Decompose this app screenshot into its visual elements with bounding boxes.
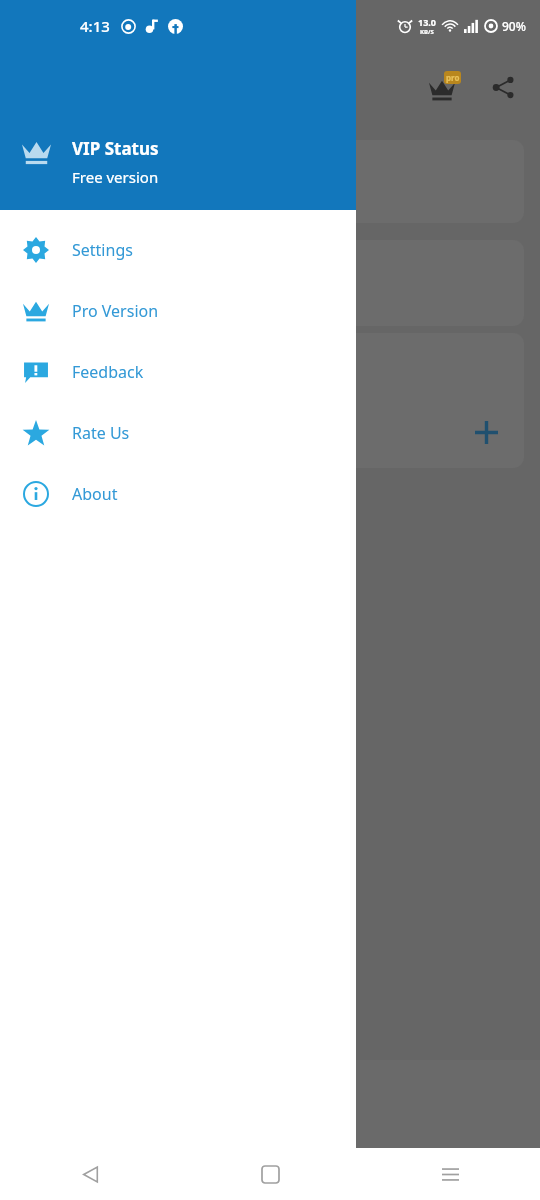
button[interactable]: Feedback: [0, 341, 356, 402]
button[interactable]: Share: [480, 64, 526, 110]
button[interactable]: Pro Version: [0, 280, 356, 341]
staticText: Feedback: [72, 361, 144, 383]
button[interactable]: Add connection: [468, 414, 504, 450]
staticText: 90%: [502, 18, 526, 34]
button[interactable]: Home: [180, 1148, 360, 1200]
button[interactable]: Settings: [0, 219, 356, 280]
staticText: 4:13: [80, 16, 110, 36]
button[interactable]: About: [0, 463, 356, 524]
staticText: Pro Version: [72, 300, 159, 322]
button[interactable]: Rate Us: [0, 402, 356, 463]
button[interactable]: Provider: [16, 140, 524, 223]
staticText: Free version: [72, 167, 159, 187]
staticText: Provider: [36, 160, 92, 179]
staticText: VIP Status: [72, 137, 159, 160]
button[interactable]: Connection Name: [16, 240, 524, 326]
staticText: Tap to give permission: [36, 286, 206, 308]
button[interactable]: VIP Status: [0, 128, 356, 210]
button[interactable]: Recent apps: [360, 1148, 540, 1200]
button[interactable]: Go Pro: [422, 64, 468, 110]
staticText: Rate Us: [72, 422, 130, 444]
staticText: 13.0: [418, 16, 436, 28]
button[interactable]: Back: [0, 1148, 180, 1200]
button[interactable]: Add connection: [16, 333, 524, 468]
staticText: KB/S: [420, 28, 434, 36]
staticText: About: [72, 483, 118, 505]
staticText: pro: [446, 72, 460, 83]
staticText: Settings: [72, 239, 133, 261]
